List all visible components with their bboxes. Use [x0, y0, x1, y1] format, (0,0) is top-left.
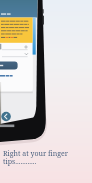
staticText: Right at your finger tips............ — [3, 149, 69, 166]
button[interactable] — [1, 111, 11, 121]
button[interactable] — [0, 61, 18, 70]
